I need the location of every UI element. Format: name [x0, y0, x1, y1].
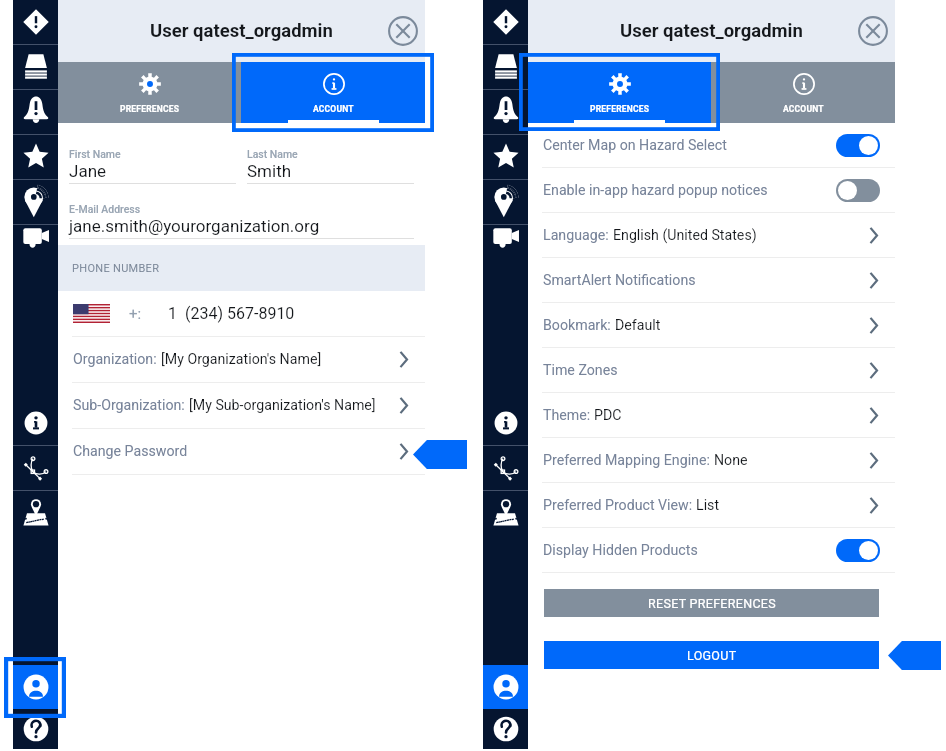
staticText: Theme: — [543, 407, 594, 424]
button[interactable]: Location — [483, 180, 528, 224]
staticText: PREFERENCES — [120, 104, 180, 114]
staticText: Enable in-app hazard popup notices — [543, 182, 768, 199]
staticText: Center Map on Hazard Select — [543, 137, 727, 154]
button[interactable]: Center Map on Hazard Select — [528, 123, 895, 167]
button[interactable]: Language: — [528, 213, 895, 257]
staticText: None — [714, 452, 748, 469]
button[interactable]: Hazards — [13, 0, 58, 44]
button[interactable]: Help — [483, 709, 528, 749]
staticText: [My Organization's Name] — [161, 351, 322, 368]
button[interactable]: Video — [13, 225, 58, 269]
staticText: PDC — [594, 407, 622, 424]
staticText: Preferred Product View: — [543, 497, 696, 514]
staticText: LOGOUT — [687, 648, 737, 663]
button[interactable]: Favorites — [483, 135, 528, 179]
button[interactable]: Layers — [13, 45, 58, 89]
staticText: Change Password — [73, 443, 188, 460]
button[interactable]: Bookmark: — [528, 303, 895, 347]
button[interactable]: Display Hidden Products — [528, 528, 895, 572]
button[interactable]: SmartAlert Notifications — [528, 258, 895, 302]
staticText: ACCOUNT — [313, 104, 354, 114]
button[interactable]: Account — [483, 665, 528, 709]
button[interactable]: ACCOUNT — [711, 62, 895, 123]
staticText: PREFERENCES — [590, 104, 650, 114]
button[interactable]: Close — [858, 16, 888, 46]
staticText: ACCOUNT — [783, 104, 824, 114]
button[interactable]: Favorites — [13, 135, 58, 179]
staticText: jane.smith@yourorganization.org — [69, 216, 320, 236]
button[interactable]: Video — [483, 225, 528, 269]
button[interactable]: Info — [483, 401, 528, 445]
staticText: SmartAlert Notifications — [543, 272, 696, 289]
button[interactable]: Theme: — [528, 393, 895, 437]
staticText: Default — [615, 317, 661, 334]
staticText: E-Mail Address — [69, 203, 141, 215]
staticText: Jane — [69, 161, 107, 181]
button[interactable]: Account — [13, 665, 58, 709]
button[interactable]: Sub-Organization: — [58, 383, 425, 428]
staticText: Language: — [543, 227, 613, 244]
staticText: First Name — [69, 148, 121, 160]
button[interactable]: Alerts — [13, 90, 58, 134]
staticText: List — [696, 497, 720, 514]
button[interactable]: Info — [13, 401, 58, 445]
button[interactable]: PREFERENCES — [58, 62, 241, 123]
staticText: +: — [129, 305, 142, 323]
button[interactable]: Organization: — [58, 337, 425, 382]
staticText: Smith — [247, 161, 292, 181]
button[interactable]: Help — [13, 709, 58, 749]
staticText: Bookmark: — [543, 317, 615, 334]
staticText: User qatest_orgadmin — [150, 20, 333, 42]
button[interactable]: RESET PREFERENCES — [544, 589, 879, 617]
staticText: PHONE NUMBER — [72, 262, 160, 275]
staticText: RESET PREFERENCES — [648, 596, 776, 611]
button[interactable]: Hazards — [483, 0, 528, 44]
button[interactable]: Layers — [483, 45, 528, 89]
staticText: Display Hidden Products — [543, 542, 698, 559]
staticText: 1 — [168, 304, 177, 323]
staticText: Sub-Organization: — [73, 397, 189, 414]
button[interactable]: LOGOUT — [544, 641, 879, 669]
staticText: English (United States) — [613, 227, 757, 244]
button[interactable]: Enable in-app hazard popup notices — [528, 168, 895, 212]
staticText: Preferred Mapping Engine: — [543, 452, 714, 469]
button[interactable]: Close — [388, 16, 418, 46]
staticText: [My Sub-organization's Name] — [189, 397, 376, 414]
button[interactable]: Location — [13, 180, 58, 224]
staticText: Last Name — [247, 148, 298, 160]
button[interactable]: Map — [483, 491, 528, 535]
button[interactable]: Map — [13, 491, 58, 535]
button[interactable]: Connections — [13, 446, 58, 490]
button[interactable]: Preferred Product View: — [528, 483, 895, 527]
button[interactable]: Time Zones — [528, 348, 895, 392]
staticText: User qatest_orgadmin — [620, 20, 803, 42]
staticText: Organization: — [73, 351, 161, 368]
button[interactable]: PREFERENCES — [528, 62, 711, 123]
button[interactable]: Connections — [483, 446, 528, 490]
staticText: Time Zones — [543, 362, 618, 379]
button[interactable]: Preferred Mapping Engine: — [528, 438, 895, 482]
staticText: (234) 567-8910 — [185, 304, 295, 323]
button[interactable]: Alerts — [483, 90, 528, 134]
button[interactable]: ACCOUNT — [241, 62, 425, 123]
button[interactable]: Change Password — [58, 429, 425, 474]
